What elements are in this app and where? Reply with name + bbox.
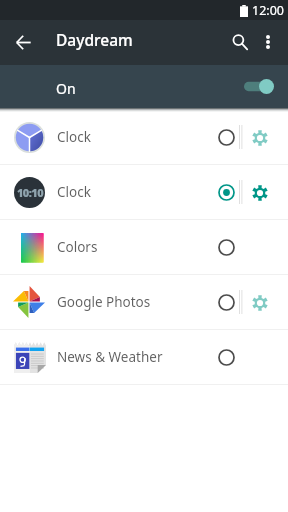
button[interactable]: Settings for Clock	[241, 174, 278, 211]
button[interactable]: Select Colors	[205, 226, 248, 269]
button[interactable]: More options	[249, 23, 287, 61]
staticText: Clock	[57, 183, 91, 201]
staticText: Google Photos	[57, 293, 151, 311]
staticText: On	[56, 79, 76, 98]
staticText: 10:10	[17, 185, 43, 200]
button[interactable]: Settings for Google Photos	[241, 284, 278, 321]
button[interactable]: Colors	[0, 220, 288, 274]
staticText: Colors	[57, 238, 98, 256]
button[interactable]: Navigate up	[4, 23, 42, 61]
button[interactable]: 10:10	[0, 165, 288, 219]
staticText: Daydream	[56, 29, 133, 50]
button[interactable]: Google Photos	[0, 275, 288, 329]
button[interactable]: Settings for Clock	[241, 119, 278, 156]
button[interactable]: Select News & Weather	[205, 336, 248, 379]
staticText: Clock	[57, 128, 91, 146]
button[interactable]: Clock	[0, 110, 288, 164]
button[interactable]: News & Weather	[0, 330, 288, 384]
button[interactable]: On	[0, 65, 288, 108]
button[interactable]: Select Clock	[205, 171, 248, 214]
button[interactable]: Search	[221, 23, 259, 61]
staticText: News & Weather	[57, 348, 163, 366]
staticText: 12:00	[252, 2, 284, 19]
button[interactable]: Select Clock	[205, 116, 248, 159]
button[interactable]: Select Google Photos	[205, 281, 248, 324]
